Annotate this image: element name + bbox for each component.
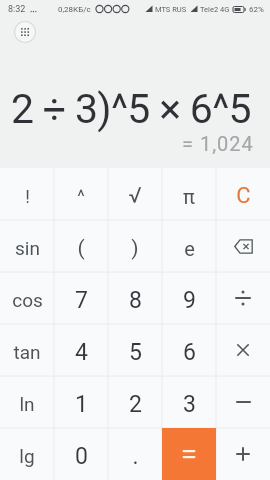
staticText: ): [131, 236, 139, 261]
button[interactable]: 5: [108, 324, 162, 376]
button[interactable]: !: [0, 168, 54, 220]
button[interactable]: 2: [108, 376, 162, 428]
button[interactable]: 9: [162, 272, 216, 324]
button[interactable]: 6: [162, 324, 216, 376]
button[interactable]: ^: [54, 168, 108, 220]
staticText: 4: [75, 339, 88, 366]
staticText: 8:32: [8, 4, 26, 15]
button[interactable]: 8: [108, 272, 162, 324]
staticText: MTS RUS: [155, 5, 187, 14]
staticText: 0,28КБ/с: [58, 5, 91, 14]
staticText: cos: [12, 289, 43, 311]
button[interactable]: [162, 428, 216, 480]
button[interactable]: [216, 324, 270, 376]
staticText: 3: [183, 391, 196, 418]
button[interactable]: [14, 21, 36, 43]
staticText: π: [183, 185, 195, 208]
button[interactable]: 4: [54, 324, 108, 376]
staticText: ^: [77, 186, 85, 207]
staticText: lg: [19, 445, 35, 467]
button[interactable]: sin: [0, 220, 54, 272]
staticText: 6: [183, 339, 196, 366]
staticText: tan: [13, 341, 41, 363]
staticText: 8: [129, 287, 142, 314]
staticText: .: [132, 443, 139, 470]
button[interactable]: π: [162, 168, 216, 220]
button[interactable]: √: [108, 168, 162, 220]
staticText: sin: [15, 237, 40, 259]
staticText: 62%: [249, 5, 264, 14]
staticText: ln: [19, 393, 35, 415]
button[interactable]: e: [162, 220, 216, 272]
staticText: = 1,024: [182, 132, 254, 155]
button[interactable]: lg: [0, 428, 54, 480]
staticText: C: [236, 183, 251, 209]
staticText: (: [77, 236, 85, 261]
button[interactable]: [216, 272, 270, 324]
staticText: 9: [183, 287, 196, 314]
button[interactable]: ): [108, 220, 162, 272]
staticText: !: [25, 186, 30, 207]
staticText: e: [184, 237, 195, 260]
staticText: 2: [129, 391, 142, 418]
button[interactable]: 0: [54, 428, 108, 480]
button[interactable]: [216, 376, 270, 428]
button[interactable]: [216, 220, 270, 272]
button[interactable]: 3: [162, 376, 216, 428]
button[interactable]: cos: [0, 272, 54, 324]
button[interactable]: ln: [0, 376, 54, 428]
button[interactable]: 7: [54, 272, 108, 324]
button[interactable]: .: [108, 428, 162, 480]
button[interactable]: (: [54, 220, 108, 272]
staticText: 1: [75, 391, 88, 418]
button[interactable]: [216, 428, 270, 480]
staticText: 7: [75, 287, 88, 314]
button[interactable]: tan: [0, 324, 54, 376]
staticText: √: [128, 183, 142, 209]
staticText: 5: [129, 339, 142, 366]
staticText: ...: [30, 4, 38, 15]
button[interactable]: 1: [54, 376, 108, 428]
button[interactable]: C: [216, 168, 270, 220]
staticText: Tele2 4G: [200, 5, 230, 14]
staticText: 2 ÷ 3)^5 × 6^5: [11, 85, 251, 133]
staticText: 0: [75, 443, 88, 470]
